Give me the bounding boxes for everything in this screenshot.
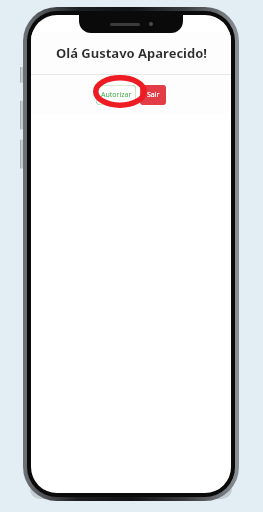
other: Destaque no botão Autorizar bbox=[93, 75, 147, 108]
button[interactable]: Sair bbox=[140, 85, 166, 105]
staticText: Olá Gustavo Aparecido! bbox=[56, 44, 207, 62]
staticText: Sair bbox=[147, 90, 160, 100]
button[interactable]: Autorizar bbox=[96, 85, 136, 105]
staticText: Autorizar bbox=[101, 90, 132, 100]
